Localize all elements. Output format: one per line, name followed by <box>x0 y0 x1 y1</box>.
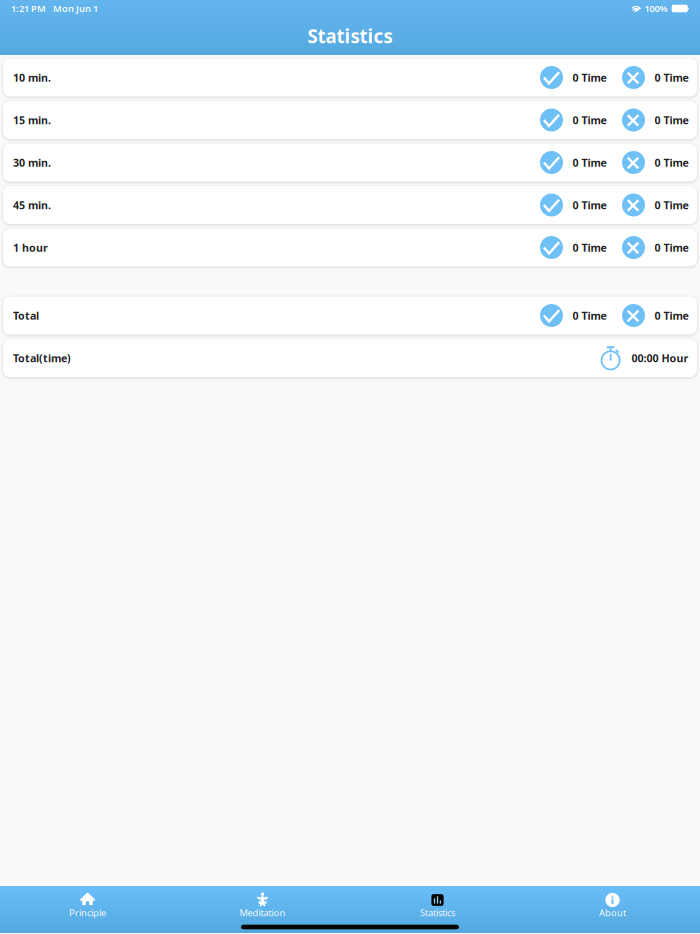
staticText: 0 Time <box>654 155 688 170</box>
staticText: 45 min. <box>13 198 51 212</box>
button[interactable]: 10 min. <box>3 58 697 96</box>
staticText: Principle <box>69 906 106 919</box>
staticText: 0 Time <box>572 240 606 255</box>
button[interactable]: Principle <box>0 886 175 921</box>
staticText: 1 hour <box>13 240 48 255</box>
staticText: 1:21 PM <box>11 2 46 15</box>
staticText: 0 Time <box>654 308 688 323</box>
staticText: Meditation <box>239 906 285 919</box>
staticText: 0 Time <box>572 70 606 85</box>
staticText: Mon Jun 1 <box>53 2 98 15</box>
staticText: 100% <box>644 2 667 15</box>
staticText: 00:00 Hour <box>631 351 688 365</box>
button[interactable]: Meditation <box>175 886 350 921</box>
staticText: 30 min. <box>13 155 51 170</box>
staticText: 0 Time <box>654 198 688 212</box>
staticText: Statistics <box>420 906 455 919</box>
button[interactable]: Statistics <box>350 886 525 921</box>
staticText: 0 Time <box>654 70 688 85</box>
button[interactable]: About <box>525 886 700 921</box>
button[interactable]: 15 min. <box>3 101 697 139</box>
button[interactable]: 30 min. <box>3 143 697 181</box>
staticText: 10 min. <box>13 70 51 85</box>
staticText: 0 Time <box>654 240 688 255</box>
staticText: 0 Time <box>572 198 606 212</box>
staticText: 0 Time <box>572 155 606 170</box>
staticText: About <box>599 906 626 919</box>
button[interactable]: 45 min. <box>3 186 697 224</box>
button[interactable]: Total <box>3 296 697 334</box>
staticText: 0 Time <box>572 308 606 323</box>
staticText: 0 Time <box>654 113 688 127</box>
staticText: Statistics <box>307 24 392 48</box>
button[interactable]: 1 hour <box>3 228 697 266</box>
button[interactable]: Total(time) <box>3 339 697 377</box>
staticText: 15 min. <box>13 113 51 127</box>
staticText: 0 Time <box>572 113 606 127</box>
staticText: Total(time) <box>13 351 71 365</box>
staticText: Total <box>13 308 39 323</box>
